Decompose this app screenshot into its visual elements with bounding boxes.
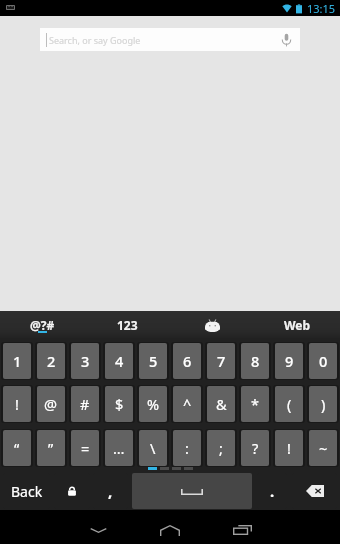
button[interactable]: Hide keyboard [70,516,126,544]
staticText: 8 [251,351,260,371]
button[interactable]: = [71,430,99,466]
staticText: ; [219,438,223,458]
button[interactable]: % [139,386,167,422]
button[interactable]: * [241,386,269,422]
other: Input method [6,5,15,10]
staticText: 13:15 [307,1,336,16]
button[interactable]: ! [3,386,31,422]
button[interactable]: 5 [139,343,167,379]
other: Emoji [205,319,220,332]
button[interactable]: Space [132,473,252,509]
button[interactable]: ) [309,386,337,422]
button[interactable]: 0 [309,343,337,379]
button[interactable]: ^ [173,386,201,422]
other: Voice search [282,33,291,47]
staticText: Back [11,482,43,501]
button[interactable]: Shift lock [54,473,90,509]
button[interactable]: 2 [37,343,65,379]
button[interactable]: \ [139,430,167,466]
staticText: 5 [149,351,158,371]
staticText: … [113,438,125,458]
staticText: ! [15,394,19,414]
button[interactable]: … [105,430,133,466]
button[interactable]: ? [241,430,269,466]
button[interactable]: ~ [309,430,337,466]
staticText: ^ [183,394,192,414]
staticText: 0 [319,351,328,371]
button[interactable]: @?# [0,311,85,338]
staticText: % [147,394,160,414]
button[interactable]: , [93,473,128,509]
button[interactable]: “ [3,430,31,466]
staticText: @?# [30,317,55,333]
button[interactable]: ( [275,386,303,422]
button[interactable]: $ [105,386,133,422]
staticText: 6 [183,351,192,371]
button[interactable]: ! [275,430,303,466]
button[interactable]: 8 [241,343,269,379]
staticText: , [108,481,113,501]
staticText: “ [14,438,20,458]
staticText: ~ [319,438,328,458]
staticText: ” [48,438,54,458]
staticText: \ [150,438,156,458]
staticText: @ [44,394,58,414]
staticText: $ [115,394,124,414]
staticText: Search, or say Google [49,34,141,46]
button[interactable]: & [207,386,235,422]
staticText: # [80,394,90,414]
staticText: . [270,481,275,501]
staticText: Web [284,317,311,333]
staticText: 7 [217,351,226,371]
button[interactable]: Search, or say Google [40,28,300,51]
button[interactable]: : [173,430,201,466]
staticText: 4 [115,351,124,371]
staticText: 1 [13,351,22,371]
button[interactable]: Delete [292,473,337,509]
staticText: & [216,394,227,414]
button[interactable]: Home [142,516,198,544]
button[interactable]: 3 [71,343,99,379]
button[interactable]: 4 [105,343,133,379]
button[interactable]: Back [3,473,50,509]
button[interactable]: # [71,386,99,422]
button[interactable]: @ [37,386,65,422]
button[interactable]: 7 [207,343,235,379]
staticText: 3 [81,351,90,371]
button[interactable]: ” [37,430,65,466]
button[interactable]: Emoji [170,311,255,338]
staticText: ) [321,394,326,414]
button[interactable]: 6 [173,343,201,379]
button[interactable]: Web [255,311,340,338]
button[interactable]: 1 [3,343,31,379]
staticText: : [185,438,189,458]
staticText: ( [287,394,292,414]
staticText: ? [252,438,259,458]
button[interactable]: Recents [214,516,270,544]
button[interactable]: 123 [85,311,170,338]
button[interactable]: ; [207,430,235,466]
staticText: 123 [117,317,138,333]
staticText: ! [287,438,291,458]
staticText: 2 [47,351,56,371]
button[interactable]: . [257,473,287,509]
staticText: 9 [285,351,294,371]
staticText: = [81,438,90,458]
staticText: * [251,394,259,414]
button[interactable]: 9 [275,343,303,379]
